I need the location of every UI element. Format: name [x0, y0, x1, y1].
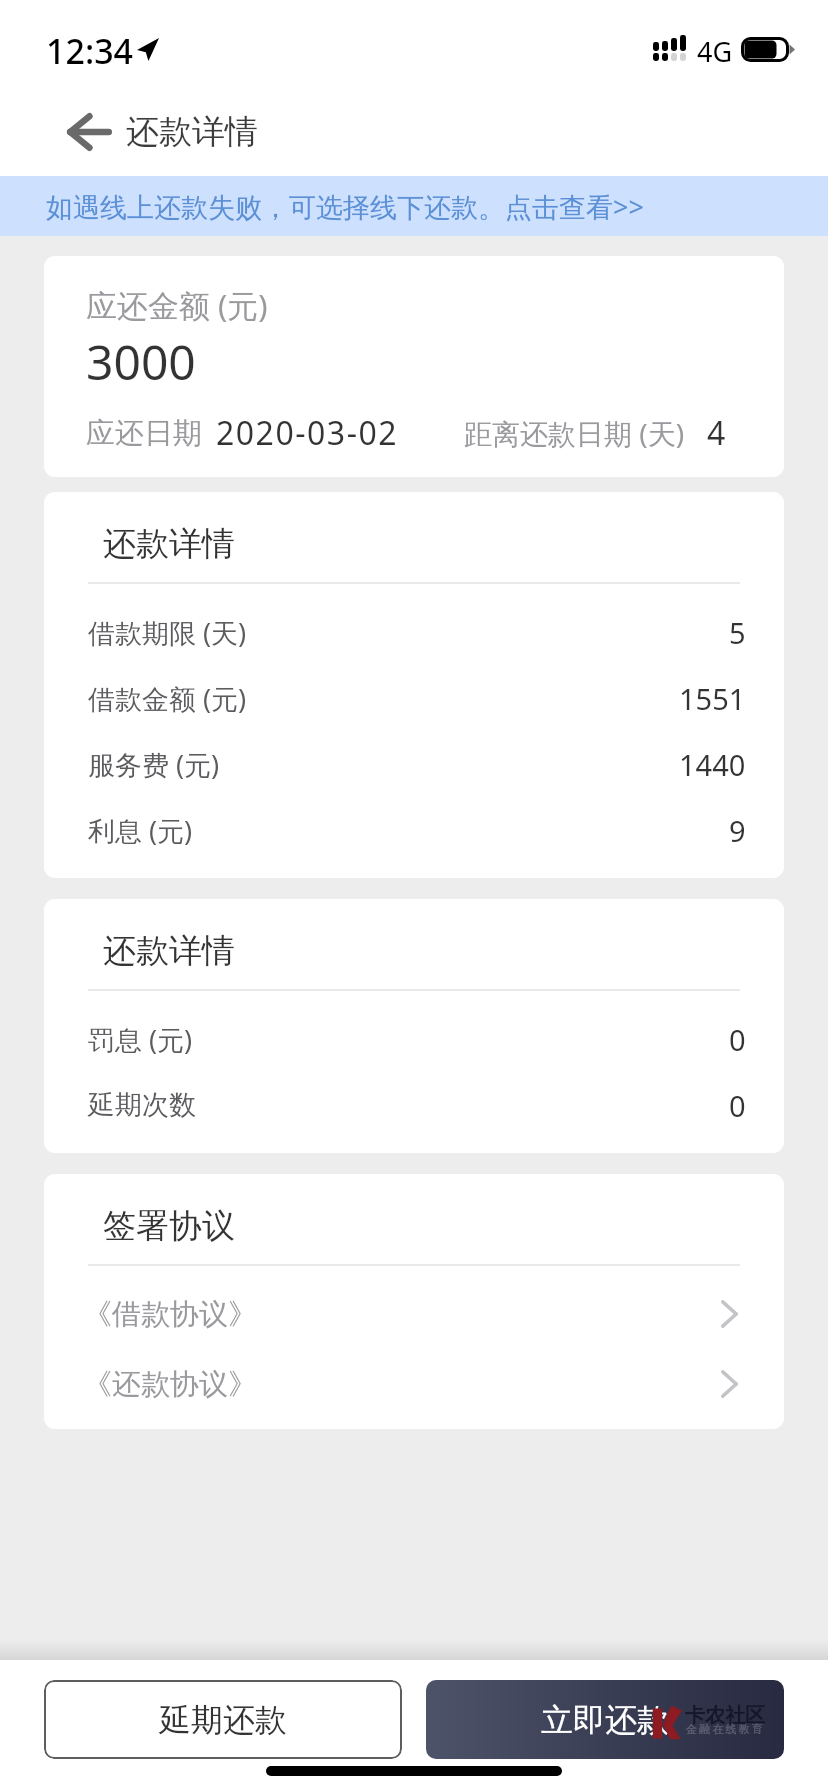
staticText: 0	[729, 1086, 746, 1125]
staticText: 《还款协议》	[83, 1366, 257, 1403]
staticText: 延期还款	[159, 1700, 287, 1740]
staticText: 卡农社区	[685, 1703, 766, 1728]
staticText: 借款期限 (天)	[88, 614, 247, 651]
button[interactable]: 立即还款	[426, 1680, 784, 1759]
staticText: 罚息 (元)	[88, 1021, 193, 1058]
button[interactable]: 《借款协议》	[44, 1279, 784, 1349]
staticText: 应还金额 (元)	[86, 284, 268, 326]
button[interactable]: 如遇线上还款失败，可选择线下还款。点击查看>>	[0, 176, 828, 236]
staticText: 《借款协议》	[83, 1296, 257, 1333]
staticText: 3000	[86, 329, 196, 394]
button[interactable]: 《还款协议》	[44, 1349, 784, 1419]
button[interactable]: Back	[53, 96, 125, 168]
button[interactable]: 延期还款	[44, 1680, 402, 1759]
staticText: 利息 (元)	[88, 812, 193, 849]
staticText: 2020-03-02	[216, 411, 399, 455]
staticText: 应还日期	[86, 415, 202, 452]
staticText: 1440	[679, 745, 746, 784]
staticText: 如遇线上还款失败，可选择线下还款。点击查看>>	[46, 188, 644, 225]
staticText: 还款详情	[103, 930, 235, 972]
staticText: 5	[729, 613, 746, 652]
staticText: 还款详情	[126, 111, 258, 153]
staticText: 距离还款日期 (天)	[464, 414, 685, 452]
staticText: 立即还款	[541, 1700, 669, 1740]
staticText: 签署协议	[103, 1205, 235, 1247]
staticText: 还款详情	[103, 523, 235, 565]
staticText: 9	[729, 811, 746, 850]
staticText: 4G	[697, 33, 733, 70]
staticText: 金融在线教育	[686, 1722, 766, 1736]
staticText: 借款金额 (元)	[88, 680, 247, 717]
staticText: 12:34	[46, 28, 134, 74]
staticText: 1551	[679, 679, 746, 718]
staticText: 服务费 (元)	[88, 746, 220, 783]
staticText: 4	[707, 411, 726, 455]
staticText: 延期次数	[88, 1088, 196, 1122]
staticText: 0	[729, 1020, 746, 1059]
